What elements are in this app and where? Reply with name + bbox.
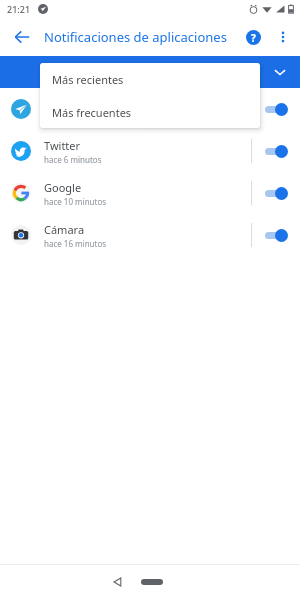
button[interactable]: Activar Google — [252, 172, 300, 214]
staticText: 21:21 — [7, 3, 31, 15]
button[interactable]: Expandir — [0, 56, 300, 88]
staticText: Más recientes — [52, 72, 124, 87]
staticText: Notificaciones de aplicaciones — [44, 28, 227, 46]
staticText: hace 2 minutos — [44, 112, 102, 123]
button[interactable]: Atrás — [104, 569, 130, 595]
staticText: Cámara — [44, 222, 85, 237]
staticText: Más frecuentes — [52, 105, 132, 120]
button[interactable]: Más frecuentes — [40, 96, 260, 128]
button[interactable]: Activar Twitter — [252, 130, 300, 172]
button[interactable]: Activar Telegram — [252, 88, 300, 130]
button[interactable]: Atrás — [6, 21, 38, 53]
staticText: ? — [251, 31, 256, 45]
staticText: hace 10 minutos — [44, 196, 107, 207]
button[interactable]: Más recientes — [40, 63, 260, 96]
staticText: hace 16 minutos — [44, 238, 107, 249]
button[interactable]: Google — [0, 172, 300, 214]
button[interactable]: Activar Cámara — [252, 214, 300, 256]
other: Expandir — [272, 64, 288, 80]
button[interactable]: Cámara — [0, 214, 300, 256]
button[interactable]: Telegram — [0, 88, 300, 130]
staticText: Telegram — [44, 96, 93, 111]
staticText: Twitter — [44, 138, 81, 153]
button[interactable]: Inicio — [132, 571, 172, 593]
staticText: hace 6 minutos — [44, 154, 102, 165]
staticText: Google — [44, 180, 82, 195]
button[interactable]: Twitter — [0, 130, 300, 172]
button[interactable]: Más opciones — [268, 22, 298, 52]
button[interactable]: Ayuda — [238, 22, 268, 52]
